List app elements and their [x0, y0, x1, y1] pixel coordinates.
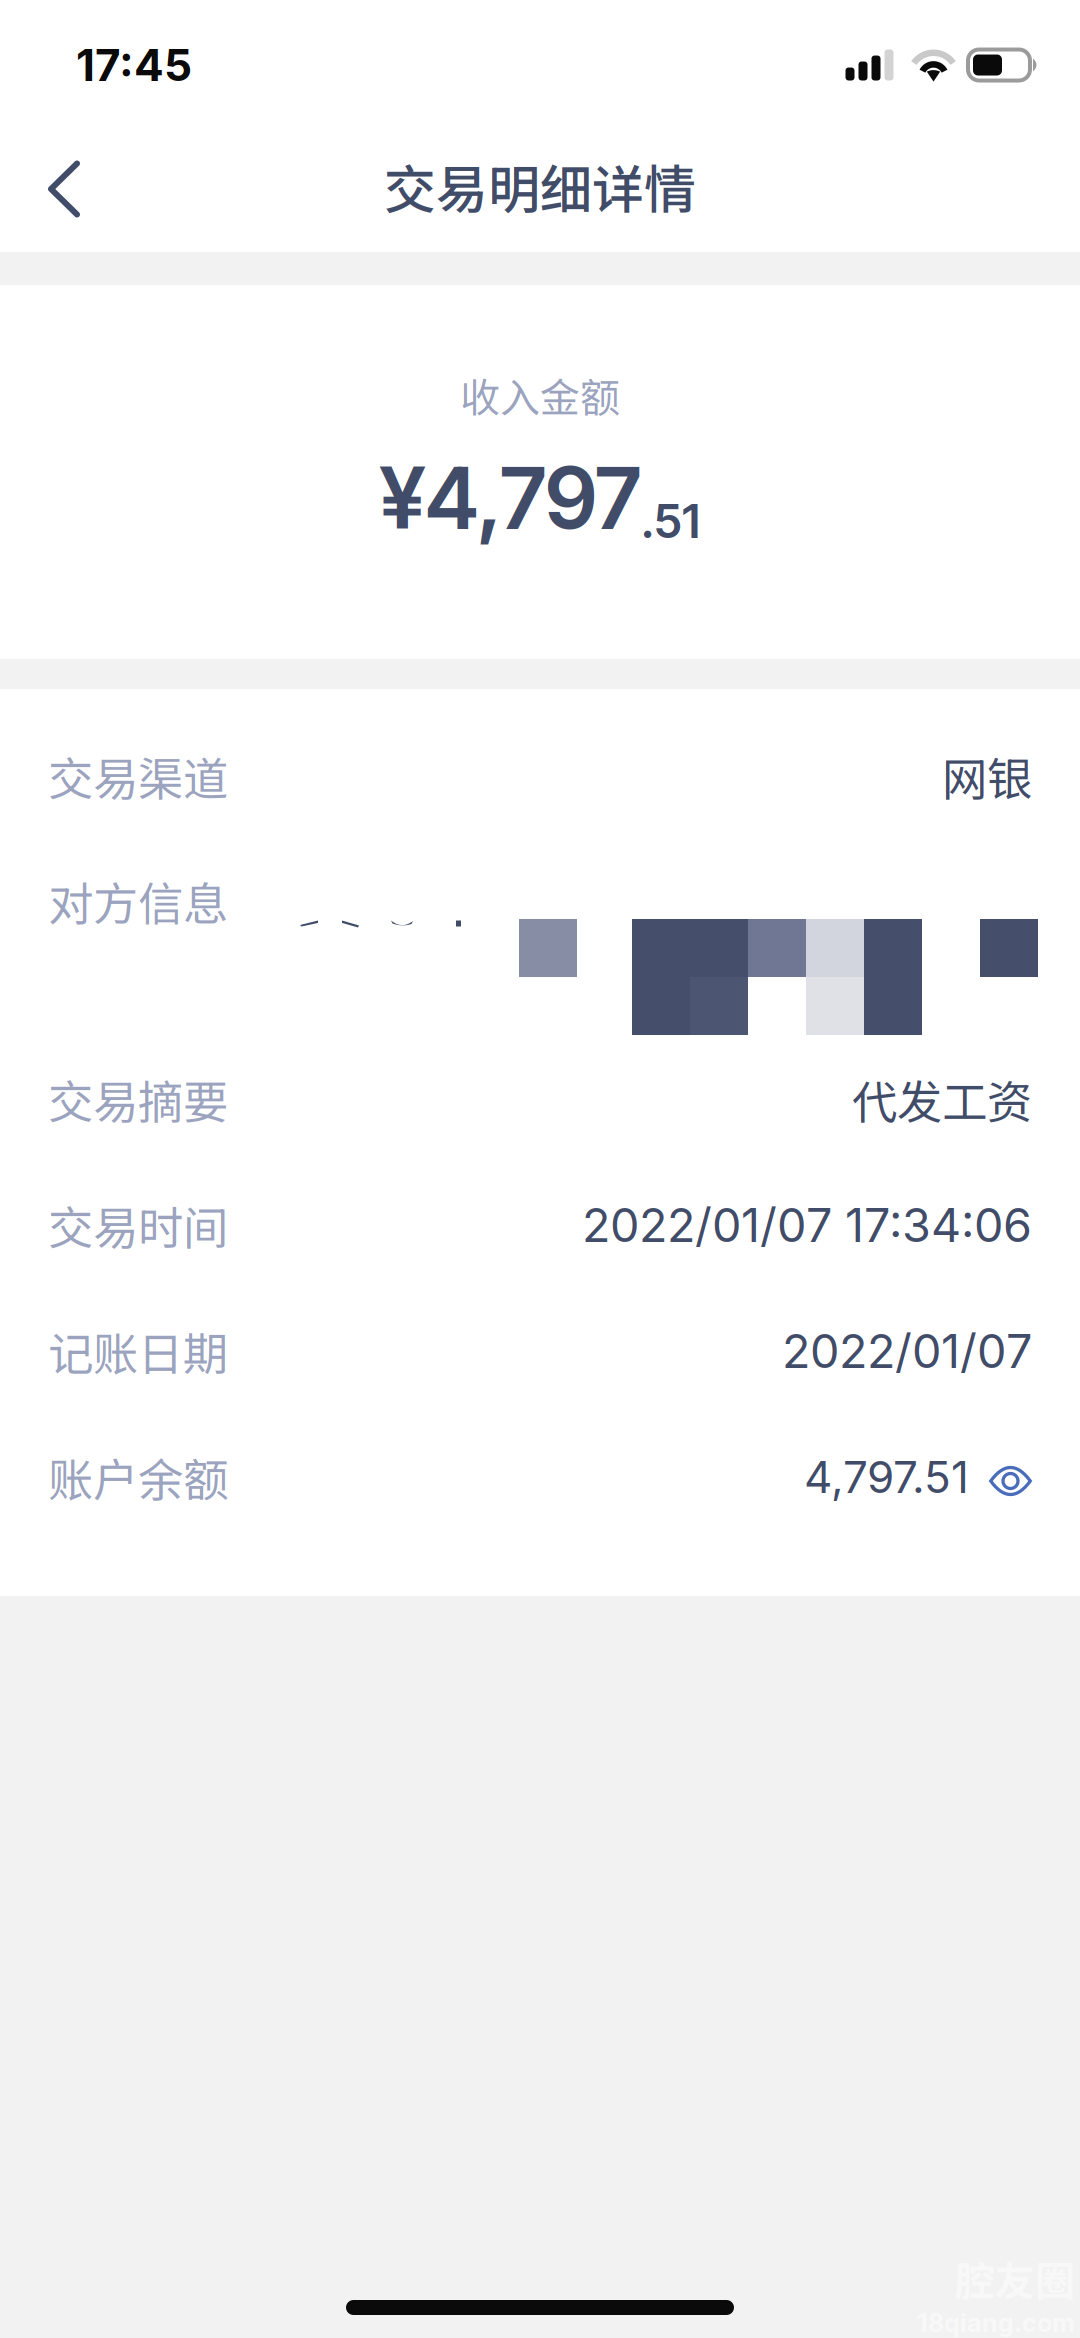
button[interactable]: 显示账户余额 [989, 1460, 1032, 1493]
staticText: 交易时间 [48, 1192, 228, 1258]
staticText: 17:45 [76, 38, 192, 92]
staticText: 对方信息 [48, 868, 228, 934]
staticText: 代发工资 [852, 1066, 1032, 1132]
staticText: 交易明细详情 [384, 148, 696, 224]
staticText: 记账日期 [48, 1318, 228, 1384]
staticText: .51 [641, 493, 700, 549]
staticText: 交易渠道 [48, 743, 228, 809]
staticText: 2022/01/07 17:34:06 [582, 1197, 1032, 1253]
staticText: ¥4,797 [380, 446, 641, 549]
staticText: 交易摘要 [48, 1066, 228, 1132]
staticText: 账户余额 [48, 1444, 228, 1510]
button[interactable]: 返回 [0, 130, 128, 252]
staticText: 网银 [942, 743, 1032, 809]
staticText: 4,797.51 [804, 1450, 969, 1504]
staticText: 收入金额 [460, 366, 620, 424]
staticText: 2022/01/07 [782, 1323, 1032, 1379]
